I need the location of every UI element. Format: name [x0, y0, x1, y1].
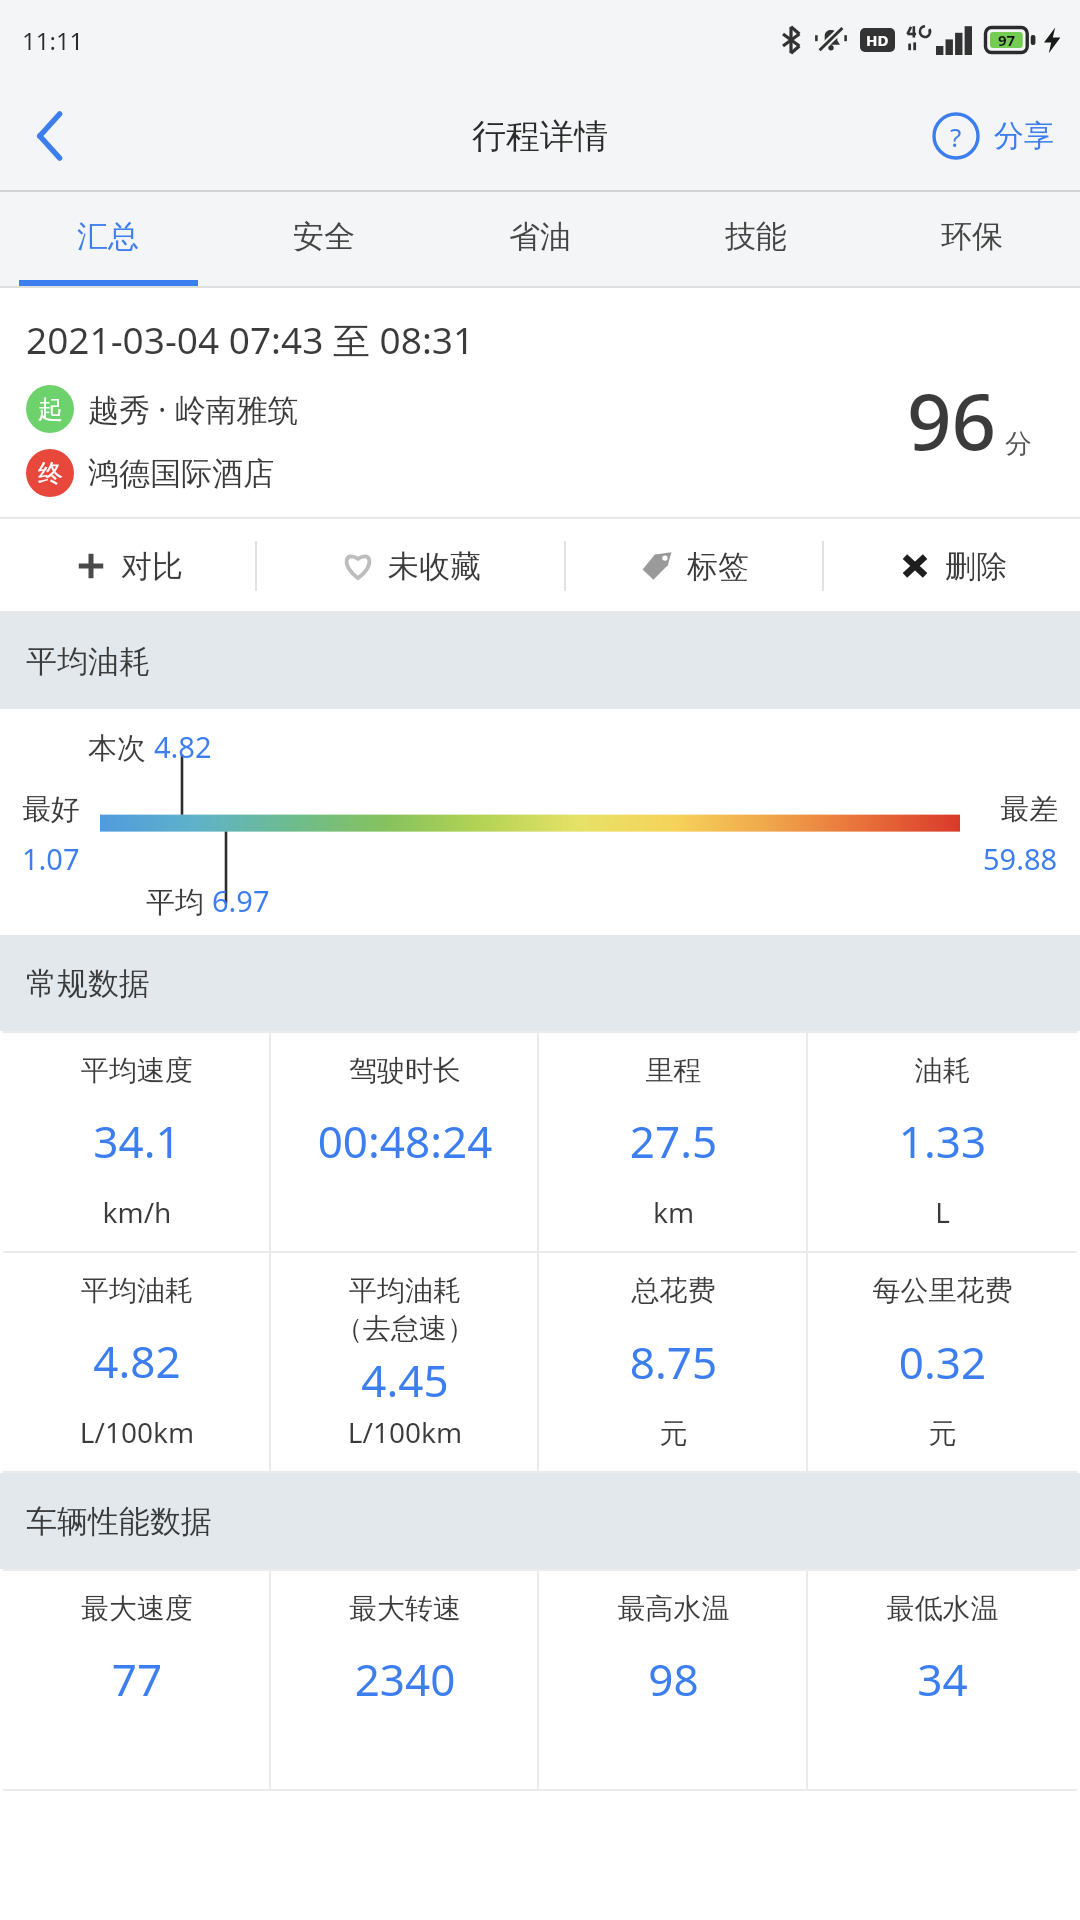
other: 帮助	[932, 112, 980, 160]
staticText: 元	[814, 1416, 1071, 1451]
staticText: 平均油耗	[26, 642, 150, 681]
button[interactable]: 每公里花费	[808, 1253, 1077, 1471]
staticText: 34.1	[9, 1111, 265, 1171]
staticText: 4.82	[9, 1331, 265, 1391]
staticText: 平均油耗 （去怠速）	[277, 1273, 533, 1347]
staticText: 8.75	[545, 1332, 802, 1392]
staticText: 省油	[509, 217, 571, 256]
staticText: 终	[38, 458, 63, 489]
staticText: 行程详情	[472, 115, 608, 158]
staticText: 27.5	[545, 1111, 802, 1171]
staticText: L/100km	[277, 1413, 533, 1451]
staticText: 删除	[945, 547, 1007, 586]
staticText: HD	[866, 30, 889, 50]
button[interactable]: 平均速度	[3, 1033, 271, 1251]
staticText: 每公里花费	[814, 1273, 1071, 1308]
staticText: 越秀 · 岭南雅筑	[88, 388, 299, 430]
button[interactable]: 帮助	[932, 112, 1054, 160]
button[interactable]: 驾驶时长	[271, 1033, 539, 1251]
staticText: ?	[950, 119, 962, 154]
button[interactable]: 安全	[216, 192, 432, 280]
staticText: L/100km	[9, 1413, 265, 1451]
staticText: 车辆性能数据	[26, 1502, 212, 1541]
staticText: 98	[545, 1649, 802, 1709]
staticText: 分享	[994, 117, 1054, 155]
staticText: km	[545, 1193, 802, 1231]
staticText: 分	[1005, 427, 1032, 461]
button[interactable]: 删除	[824, 519, 1080, 613]
button[interactable]: 最低水温	[808, 1571, 1077, 1789]
staticText: 油耗	[814, 1053, 1071, 1088]
button[interactable]: 最大速度	[3, 1571, 271, 1789]
staticText: 最低水温	[814, 1591, 1071, 1626]
staticText: 4.82	[154, 727, 212, 766]
staticText: 59.88	[983, 839, 1058, 878]
staticText: 技能	[725, 217, 787, 256]
button[interactable]: 汇总	[0, 192, 216, 280]
staticText: 元	[545, 1416, 802, 1451]
staticText: L	[814, 1193, 1071, 1231]
button[interactable]: 平均油耗 （去怠速）	[271, 1253, 539, 1471]
staticText: 里程	[545, 1053, 802, 1088]
staticText: 本次	[88, 727, 154, 767]
button[interactable]: 最大转速	[271, 1571, 539, 1789]
staticText: 最大速度	[9, 1591, 265, 1626]
staticText: 11:11	[22, 24, 84, 57]
staticText: 平均速度	[9, 1053, 265, 1088]
staticText: km/h	[9, 1193, 265, 1231]
staticText: 平均油耗	[9, 1273, 265, 1308]
staticText: 平均	[146, 881, 212, 921]
staticText: 汇总	[77, 217, 139, 256]
staticText: 6.97	[212, 881, 270, 920]
staticText: 鸿德国际酒店	[88, 454, 274, 493]
button[interactable]: 返回	[0, 86, 100, 186]
staticText: 环保	[941, 217, 1003, 256]
staticText: 对比	[121, 547, 183, 586]
staticText: 96	[907, 367, 997, 473]
staticText: 最高水温	[545, 1591, 802, 1626]
staticText: 标签	[687, 547, 749, 586]
button[interactable]: 油耗	[808, 1033, 1077, 1251]
button[interactable]: 省油	[432, 192, 648, 280]
staticText: 4.45	[277, 1350, 533, 1410]
button[interactable]: 平均油耗	[3, 1253, 271, 1471]
staticText: 2340	[277, 1649, 533, 1709]
button[interactable]: 总花费	[539, 1253, 808, 1471]
staticText: 2021-03-04 07:43 至 08:31	[26, 314, 475, 365]
button[interactable]: 未收藏	[257, 519, 564, 613]
staticText: 97	[998, 30, 1016, 50]
staticText: 总花费	[545, 1273, 802, 1308]
staticText: 最好	[22, 791, 80, 828]
button[interactable]: 标签	[566, 519, 822, 613]
staticText: 1.33	[814, 1111, 1071, 1171]
button[interactable]: 最高水温	[539, 1571, 808, 1789]
button[interactable]: 环保	[864, 192, 1080, 280]
staticText: 34	[814, 1649, 1071, 1709]
staticText: 安全	[293, 217, 355, 256]
staticText: 0.32	[814, 1332, 1071, 1392]
button[interactable]: 技能	[648, 192, 864, 280]
staticText: 未收藏	[388, 547, 481, 586]
button[interactable]: 里程	[539, 1033, 808, 1251]
staticText: 00:48:24	[277, 1111, 533, 1171]
staticText: 1.07	[22, 839, 80, 878]
staticText: 最差	[1000, 791, 1058, 828]
staticText: 77	[9, 1649, 265, 1709]
staticText: 驾驶时长	[277, 1053, 533, 1088]
staticText: 起	[38, 394, 63, 425]
staticText: 最大转速	[277, 1591, 533, 1626]
button[interactable]: 对比	[0, 519, 255, 613]
staticText: 常规数据	[26, 964, 150, 1003]
